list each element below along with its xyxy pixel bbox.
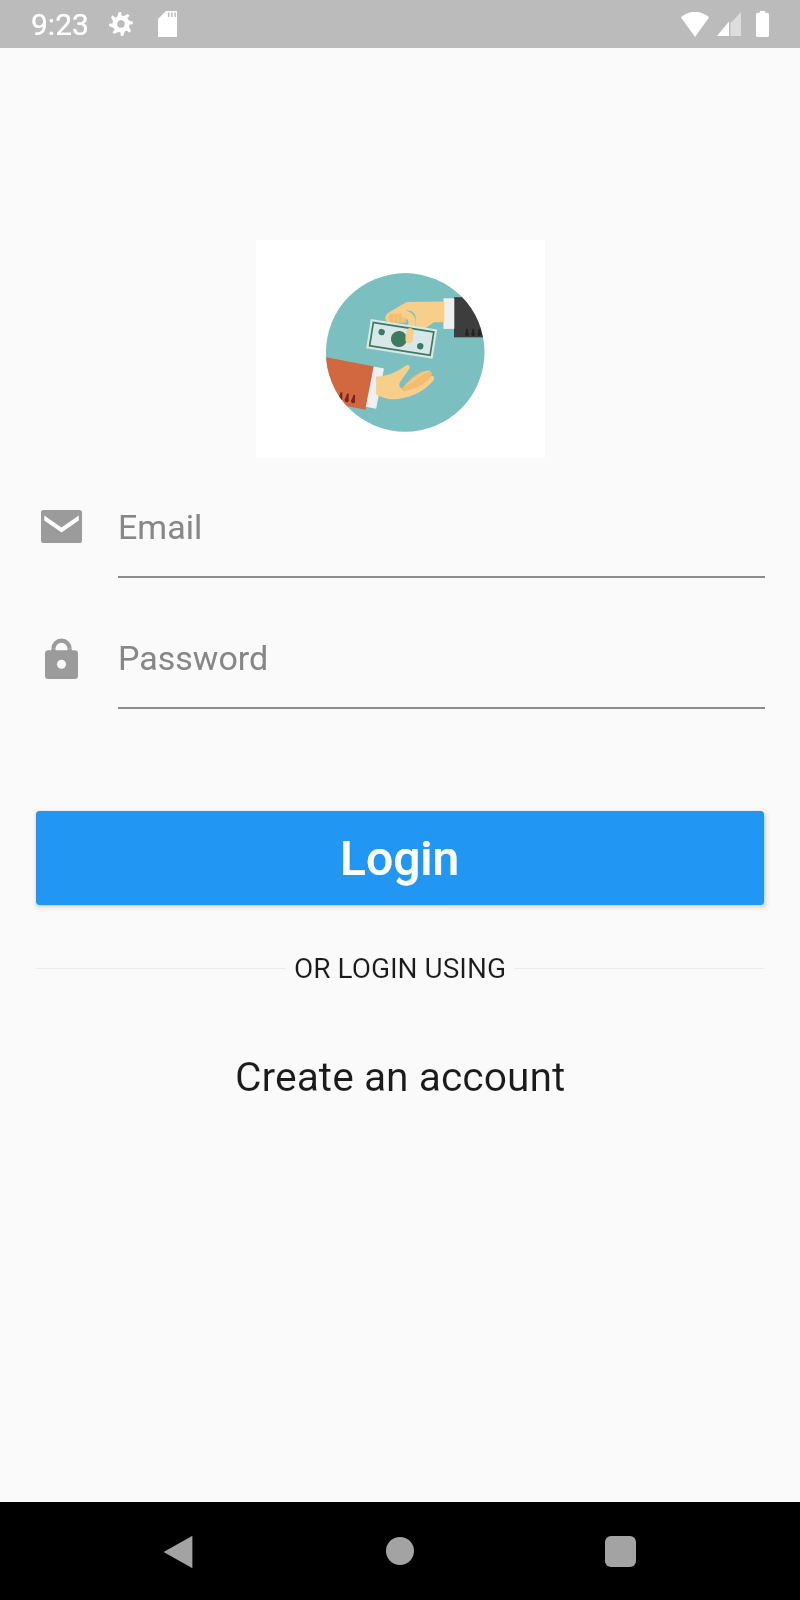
staticText: 9:23 [31,7,89,42]
button[interactable]: Home [386,1537,414,1565]
staticText: Password [118,638,269,678]
staticText: OR LOGIN USING [294,952,506,985]
staticText: Email [118,507,203,547]
staticText: Create an account [235,1053,566,1101]
button[interactable]: Create an account [0,1042,800,1112]
button[interactable]: Back [163,1535,193,1569]
staticText: Login [340,830,460,886]
button[interactable]: Recent apps [605,1536,636,1567]
button[interactable]: Login [36,811,764,905]
